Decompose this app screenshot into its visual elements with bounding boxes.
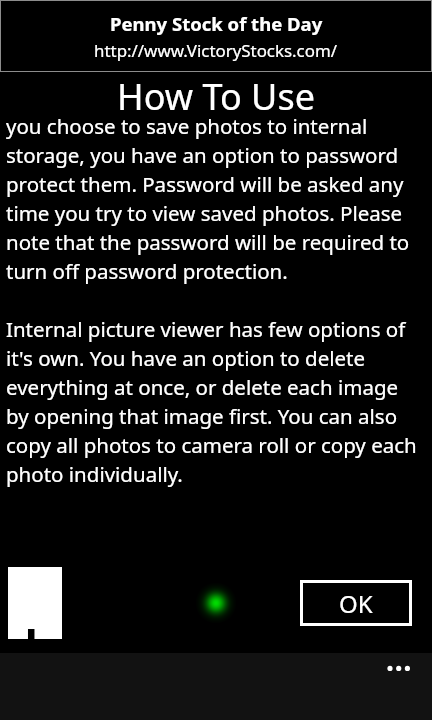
button[interactable]: OK [300, 580, 412, 626]
staticText: Penny Stock of the Day [110, 11, 323, 36]
staticText: http://www.VictoryStocks.com/ [94, 39, 338, 62]
button[interactable]: Saved pictures [8, 567, 62, 639]
staticText: How To Use [0, 72, 432, 121]
button[interactable]: More options [0, 653, 432, 720]
staticText: you choose to save photos to internal st… [6, 112, 420, 488]
button[interactable]: Penny Stock of the Day [0, 0, 432, 72]
staticText: OK [339, 587, 373, 620]
